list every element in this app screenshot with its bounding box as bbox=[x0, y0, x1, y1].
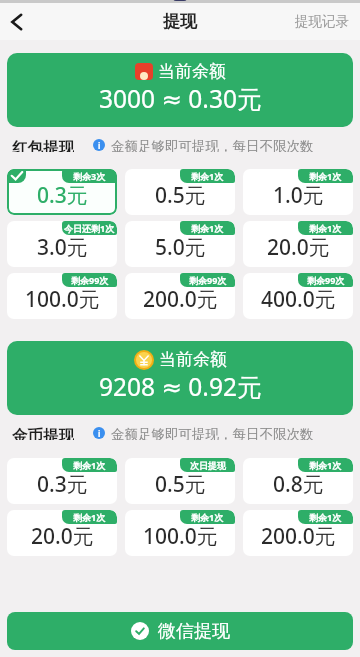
staticText: 金额足够即可提现，每日不限次数 bbox=[111, 138, 314, 152]
staticText: 200.0元 bbox=[143, 285, 218, 314]
staticText: 金币提现 bbox=[12, 426, 74, 440]
button[interactable]: 剩余1次 bbox=[7, 510, 117, 556]
staticText: 0.8元 bbox=[273, 470, 324, 499]
button[interactable]: 剩余3次 bbox=[7, 169, 117, 215]
staticText: 3000 ≈ 0.30元 bbox=[99, 82, 262, 115]
staticText: 金额足够即可提现，每日不限次数 bbox=[111, 426, 314, 440]
button[interactable]: 微信提现 bbox=[7, 612, 353, 650]
staticText: 剩余1次 bbox=[73, 511, 106, 523]
button[interactable]: 提现记录 bbox=[284, 5, 360, 38]
button[interactable]: 剩余1次 bbox=[243, 169, 353, 215]
button[interactable]: 今日还剩1次 bbox=[7, 221, 117, 267]
staticText: 剩余1次 bbox=[191, 222, 224, 234]
staticText: 剩余99次 bbox=[307, 274, 345, 286]
staticText: 剩余99次 bbox=[189, 274, 227, 286]
button[interactable]: Back bbox=[0, 3, 33, 40]
button[interactable]: 剩余1次 bbox=[125, 169, 235, 215]
staticText: 剩余1次 bbox=[309, 170, 342, 182]
staticText: 剩余99次 bbox=[71, 274, 109, 286]
staticText: 当前余额 bbox=[158, 61, 226, 82]
button[interactable]: 次日提现 bbox=[125, 458, 235, 504]
staticText: 0.3元 bbox=[37, 181, 88, 210]
staticText: 次日提现 bbox=[190, 460, 226, 471]
button[interactable]: 剩余1次 bbox=[125, 510, 235, 556]
staticText: 剩余1次 bbox=[309, 511, 342, 523]
staticText: 剩余1次 bbox=[73, 459, 106, 471]
button[interactable]: 剩余1次 bbox=[125, 221, 235, 267]
button[interactable]: 剩余1次 bbox=[243, 510, 353, 556]
staticText: 剩余1次 bbox=[191, 511, 224, 523]
staticText: 0.3元 bbox=[37, 470, 88, 499]
staticText: 剩余1次 bbox=[309, 222, 342, 234]
staticText: 5.0元 bbox=[155, 233, 206, 262]
button[interactable]: 剩余1次 bbox=[243, 458, 353, 504]
staticText: 100.0元 bbox=[25, 285, 100, 314]
button[interactable]: 剩余99次 bbox=[243, 273, 353, 319]
staticText: 剩余1次 bbox=[191, 170, 224, 182]
staticText: 微信提现 bbox=[158, 620, 230, 643]
button[interactable]: 剩余1次 bbox=[7, 458, 117, 504]
staticText: 100.0元 bbox=[143, 522, 218, 551]
button[interactable]: 剩余99次 bbox=[7, 273, 117, 319]
staticText: 0.5元 bbox=[155, 181, 206, 210]
staticText: i bbox=[98, 140, 101, 151]
staticText: 0.5元 bbox=[155, 470, 206, 499]
button[interactable]: 剩余99次 bbox=[125, 273, 235, 319]
staticText: 今日还剩1次 bbox=[64, 222, 115, 234]
button[interactable]: 剩余1次 bbox=[243, 221, 353, 267]
staticText: 20.0元 bbox=[267, 233, 330, 262]
staticText: 1.0元 bbox=[273, 181, 324, 210]
staticText: 200.0元 bbox=[261, 522, 336, 551]
button[interactable]: 当前余额 bbox=[7, 341, 353, 415]
staticText: 3.0元 bbox=[37, 233, 88, 262]
staticText: 当前余额 bbox=[159, 349, 227, 370]
staticText: 剩余3次 bbox=[73, 170, 106, 182]
staticText: 20.0元 bbox=[31, 522, 94, 551]
button[interactable]: 当前余额 bbox=[7, 53, 353, 127]
staticText: 提现 bbox=[163, 11, 197, 32]
staticText: i bbox=[98, 428, 101, 439]
staticText: 剩余1次 bbox=[309, 459, 342, 471]
staticText: 9208 ≈ 0.92元 bbox=[99, 370, 262, 403]
staticText: 红包提现 bbox=[12, 138, 74, 152]
staticText: 400.0元 bbox=[261, 285, 336, 314]
